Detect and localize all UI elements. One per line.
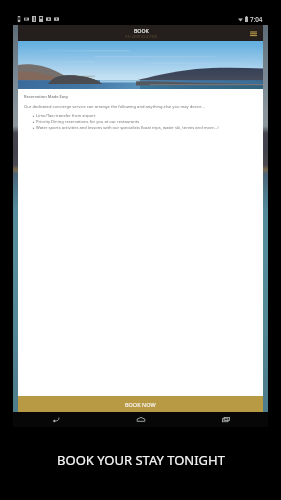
button[interactable]: Menu [249,29,258,38]
button[interactable]: Back [48,412,64,427]
staticText: Water sports activities and lessons with… [36,125,219,131]
staticText: BOOK NOW [125,401,156,408]
button[interactable]: BOOK NOW [18,396,263,412]
staticText: Limo/Taxi transfer from airport [36,113,96,119]
staticText: 7:04 [250,15,263,23]
button[interactable]: Recents [218,412,234,427]
staticText: BOOK [134,27,149,34]
staticText: Reservation Made Easy [24,94,69,99]
staticText: THE LUXURY COLLECTION [125,35,157,39]
button[interactable]: Home [133,412,149,427]
staticText: Our dedicated concierge service can arra… [24,104,205,110]
staticText: BOOK YOUR STAY TONIGHT [57,451,225,469]
staticText: Priority Dining reservations for you at … [36,119,140,125]
